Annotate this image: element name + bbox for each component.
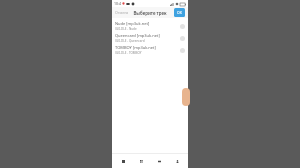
button[interactable]: Grid	[134, 154, 148, 168]
staticText: (G)I-DLE - TOMBOY	[115, 51, 142, 55]
other: Select TOMBOY [mp3uk.net]	[180, 48, 185, 53]
staticText: (G)I-DLE - Queencard	[115, 39, 145, 43]
staticText: TOMBOY [mp3uk.net]	[115, 45, 156, 50]
staticText: Отмена	[115, 10, 129, 15]
staticText: Nude [mp3uk.net]	[115, 21, 150, 26]
other: Select Queencard [mp3uk.net]	[180, 36, 185, 41]
staticText: (G)I-DLE - Nude	[115, 27, 137, 31]
button[interactable]: Profile	[170, 154, 184, 168]
button[interactable]: Nude [mp3uk.net]	[112, 20, 188, 32]
button[interactable]: Отмена	[112, 8, 132, 17]
button[interactable]: TOMBOY [mp3uk.net]	[112, 44, 188, 56]
other: Select Nude [mp3uk.net]	[180, 24, 185, 29]
button[interactable]: Queencard [mp3uk.net]	[112, 32, 188, 44]
button[interactable]: Library	[152, 154, 166, 168]
staticText: Выберите трек	[133, 10, 167, 16]
button[interactable]: OK	[174, 8, 185, 17]
button[interactable]: Home	[116, 154, 130, 168]
staticText: OK	[177, 10, 182, 15]
staticText: 10:4	[114, 1, 121, 6]
staticText: Queencard [mp3uk.net]	[115, 33, 160, 38]
